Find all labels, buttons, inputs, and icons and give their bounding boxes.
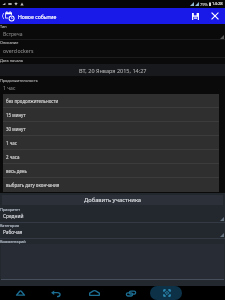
staticText: 30 минут bbox=[6, 126, 26, 132]
staticText: 79% bbox=[200, 2, 208, 7]
button[interactable]: 30 минут bbox=[3, 122, 219, 136]
staticText: Тип bbox=[0, 24, 7, 29]
button[interactable]: Встреча bbox=[0, 29, 225, 39]
button[interactable]: весь день bbox=[3, 164, 219, 178]
button[interactable]: Previous bbox=[39, 286, 73, 300]
staticText: Новое событие bbox=[18, 13, 57, 20]
button[interactable]: Средний bbox=[0, 212, 225, 221]
staticText: Дата начала bbox=[0, 58, 23, 63]
staticText: Описание bbox=[0, 40, 19, 45]
staticText: 2 часа bbox=[6, 154, 20, 160]
button[interactable]: Home bbox=[77, 286, 111, 300]
staticText: выбрать дату окончания bbox=[6, 182, 60, 188]
button[interactable]: ВТ, 20 Января 2015, 14:27 bbox=[0, 64, 225, 76]
button[interactable]: Up bbox=[0, 8, 16, 24]
button[interactable]: без продолжительности bbox=[3, 94, 219, 108]
staticText: Продолжительность bbox=[0, 78, 38, 83]
button[interactable]: 2 часа bbox=[3, 150, 219, 164]
button[interactable]: Close bbox=[205, 8, 225, 24]
staticText: 14:28 bbox=[212, 1, 223, 7]
staticText: ВТ, 20 Января 2015, 14:27 bbox=[79, 67, 147, 74]
button[interactable]: Рабочая bbox=[0, 228, 225, 237]
staticText: 1 час bbox=[6, 140, 17, 146]
button[interactable]: Back bbox=[3, 286, 37, 300]
staticText: без продолжительности bbox=[6, 98, 59, 104]
staticText: Рабочая bbox=[3, 229, 23, 236]
staticText: Средний bbox=[3, 213, 24, 220]
staticText: Встреча bbox=[3, 31, 23, 38]
staticText: 15 минут bbox=[6, 112, 26, 118]
button[interactable]: overclockers bbox=[0, 45, 225, 56]
button[interactable]: Добавить участника bbox=[2, 195, 223, 205]
button[interactable]: Save bbox=[185, 8, 205, 24]
staticText: Добавить участника bbox=[84, 196, 142, 204]
button[interactable]: выбрать дату окончания bbox=[3, 178, 219, 192]
button[interactable]: 1 час bbox=[3, 136, 219, 150]
staticText: Приоритет bbox=[0, 207, 20, 212]
staticText: весь день bbox=[6, 168, 27, 174]
button[interactable]: 15 минут bbox=[3, 108, 219, 122]
button[interactable]: Multi window bbox=[150, 286, 184, 300]
staticText: 1 час bbox=[3, 85, 16, 92]
staticText: overclockers bbox=[3, 47, 34, 54]
staticText: Комментарий bbox=[0, 239, 26, 244]
staticText: Категория bbox=[0, 223, 19, 228]
button[interactable]: Recents bbox=[114, 286, 148, 300]
